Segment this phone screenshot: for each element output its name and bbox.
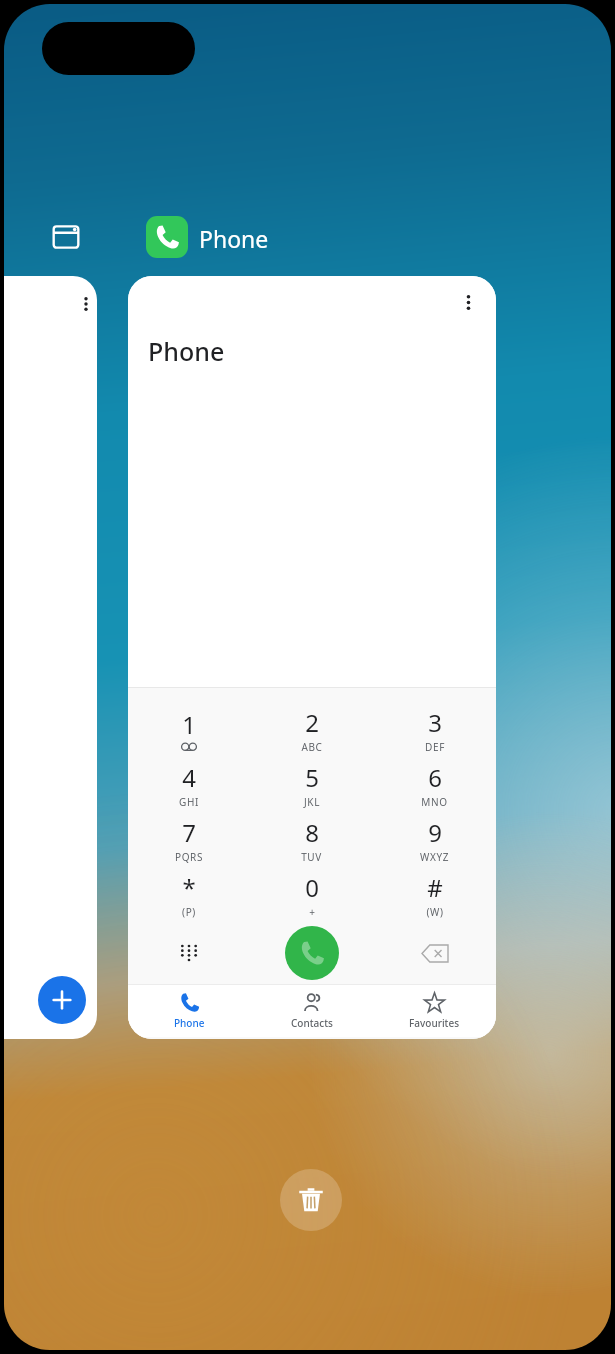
- button[interactable]: *: [128, 867, 250, 922]
- staticText: Favourites: [409, 1016, 460, 1030]
- staticText: #: [427, 871, 443, 904]
- button[interactable]: Call: [250, 922, 373, 984]
- staticText: 5: [305, 761, 319, 794]
- staticText: GHI: [179, 795, 199, 809]
- button[interactable]: 2: [250, 702, 373, 757]
- staticText: *: [182, 871, 196, 904]
- button[interactable]: 9: [373, 812, 496, 867]
- staticText: Contacts: [291, 1016, 333, 1030]
- button[interactable]: Phone: [128, 985, 250, 1037]
- staticText: +: [309, 905, 316, 919]
- staticText: Phone: [148, 334, 225, 368]
- button[interactable]: 4: [128, 757, 250, 812]
- staticText: 6: [428, 761, 442, 794]
- button[interactable]: Split screen: [48, 219, 84, 255]
- button[interactable]: Keypad: [128, 922, 250, 984]
- button[interactable]: Backspace: [373, 922, 496, 984]
- button[interactable]: Contacts: [250, 985, 373, 1037]
- staticText: Phone: [199, 223, 269, 254]
- staticText: Phone: [174, 1016, 205, 1030]
- staticText: TUV: [301, 850, 322, 864]
- button[interactable]: 7: [128, 812, 250, 867]
- staticText: 4: [182, 761, 196, 794]
- button[interactable]: More options: [128, 276, 496, 1039]
- button[interactable]: 3: [373, 702, 496, 757]
- staticText: PQRS: [175, 850, 203, 864]
- staticText: MNO: [421, 795, 448, 809]
- staticText: 3: [428, 706, 442, 739]
- staticText: (W): [426, 905, 444, 919]
- button[interactable]: Clear all: [280, 1169, 342, 1231]
- button[interactable]: 6: [373, 757, 496, 812]
- button[interactable]: More options: [71, 289, 97, 319]
- button[interactable]: More options: [452, 286, 484, 318]
- staticText: 9: [428, 816, 442, 849]
- staticText: 8: [305, 816, 319, 849]
- staticText: 1: [182, 708, 196, 741]
- button[interactable]: 5: [250, 757, 373, 812]
- staticText: DEF: [425, 740, 445, 754]
- staticText: 0: [305, 871, 319, 904]
- button[interactable]: 1: [128, 702, 250, 757]
- staticText: ABC: [301, 740, 323, 754]
- staticText: WXYZ: [420, 850, 449, 864]
- staticText: JKL: [304, 795, 320, 809]
- staticText: (P): [182, 905, 196, 919]
- button[interactable]: Favourites: [373, 985, 496, 1037]
- button[interactable]: 0: [250, 867, 373, 922]
- button[interactable]: More options: [4, 276, 97, 1039]
- staticText: 7: [182, 816, 196, 849]
- button[interactable]: New: [38, 976, 86, 1024]
- staticText: 2: [305, 706, 319, 739]
- button[interactable]: 8: [250, 812, 373, 867]
- button[interactable]: #: [373, 867, 496, 922]
